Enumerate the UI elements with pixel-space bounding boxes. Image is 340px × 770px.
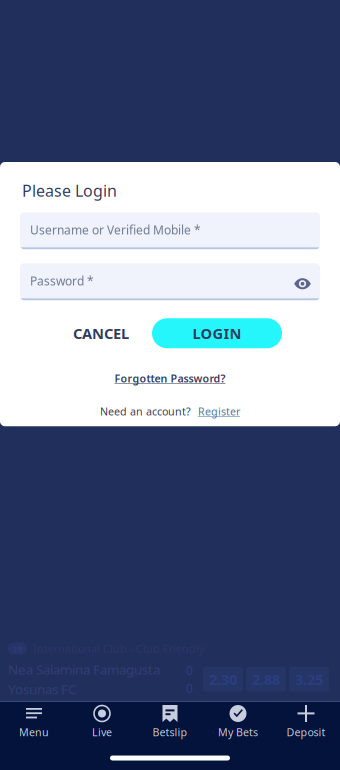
staticText: Yosunas FC [8, 680, 76, 698]
staticText: 0 [186, 662, 193, 678]
staticText: LOGIN [192, 323, 241, 343]
staticText: Forgotten Password? [114, 371, 225, 385]
button[interactable]: LOGIN [152, 318, 282, 348]
staticText: Menu [19, 725, 49, 739]
button[interactable]: Show password [286, 275, 320, 287]
staticText: 0 [186, 680, 193, 696]
button[interactable]: 3.25 [289, 667, 329, 692]
staticText: Deposit [286, 725, 325, 739]
staticText: Live [92, 725, 112, 739]
button[interactable]: My Bets [204, 702, 272, 746]
button[interactable]: Live [68, 702, 136, 746]
staticText: 19 [12, 642, 22, 655]
staticText: Nea Salamina Famagusta [8, 661, 160, 678]
button[interactable]: CANCEL [62, 318, 140, 348]
staticText: 2.30 [209, 670, 237, 689]
button[interactable]: 2.30 [203, 667, 243, 692]
staticText: 3.25 [295, 670, 323, 689]
staticText: Password * [30, 273, 94, 289]
staticText: CANCEL [73, 323, 129, 343]
staticText: Register [198, 404, 240, 418]
staticText: Betslip [152, 725, 187, 739]
button[interactable]: Register [198, 403, 240, 419]
staticText: My Bets [218, 725, 258, 739]
staticText: 2.88 [252, 670, 280, 689]
button[interactable]: Deposit [272, 702, 340, 746]
staticText: Please Login [22, 180, 117, 201]
button[interactable]: 2.88 [246, 667, 286, 692]
button[interactable]: Forgotten Password? [0, 369, 340, 387]
button[interactable]: Menu [0, 702, 68, 746]
staticText: Need an account? [100, 404, 191, 418]
button[interactable]: Betslip [136, 702, 204, 746]
staticText: Username or Verified Mobile * [30, 222, 201, 238]
